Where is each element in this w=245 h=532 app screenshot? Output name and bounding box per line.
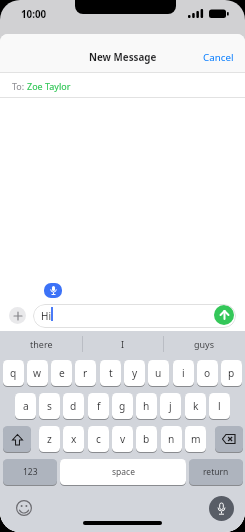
button[interactable] [9, 307, 26, 324]
staticText: p [228, 366, 235, 380]
staticText: guys [194, 338, 214, 350]
staticText: Hi [41, 309, 51, 323]
staticText: there [30, 338, 53, 350]
staticText: u [155, 366, 162, 380]
button[interactable]: Hi [33, 304, 236, 328]
button[interactable]: h [136, 393, 157, 419]
button[interactable]: g [112, 393, 133, 419]
staticText: z [47, 432, 52, 446]
button[interactable]: 123 [3, 459, 57, 485]
button[interactable]: c [88, 426, 109, 452]
button[interactable]: l [209, 393, 230, 419]
button[interactable]: p [221, 360, 242, 386]
staticText: d [70, 399, 77, 413]
button[interactable]: b [136, 426, 157, 452]
staticText: b [143, 432, 150, 446]
staticText: New Message [89, 51, 157, 64]
staticText: s [47, 399, 52, 413]
staticText: g [119, 399, 126, 413]
staticText: j [169, 399, 172, 413]
button[interactable] [3, 426, 31, 452]
button[interactable]: u [148, 360, 169, 386]
staticText: h [143, 399, 150, 413]
button[interactable]: Cancel [203, 51, 234, 64]
button[interactable]: k [185, 393, 206, 419]
button[interactable]: w [27, 360, 48, 386]
button[interactable] [214, 305, 234, 325]
staticText: f [97, 399, 101, 413]
button[interactable]: f [88, 393, 109, 419]
staticText: q [10, 366, 17, 380]
button[interactable]: o [197, 360, 218, 386]
button[interactable]: y [124, 360, 145, 386]
staticText: v [120, 432, 126, 446]
button[interactable]: v [112, 426, 133, 452]
button[interactable]: return [189, 459, 243, 485]
staticText: Cancel [203, 51, 234, 64]
button[interactable]: j [160, 393, 181, 419]
staticText: y [132, 366, 138, 380]
button[interactable]: To: [0, 75, 245, 97]
button[interactable]: z [39, 426, 60, 452]
staticText: m [191, 432, 201, 446]
button[interactable]: r [75, 360, 96, 386]
staticText: k [193, 399, 199, 413]
staticText: Zoe Taylor [27, 80, 71, 92]
staticText: r [83, 366, 88, 380]
staticText: l [218, 399, 221, 413]
button[interactable]: e [51, 360, 72, 386]
staticText: To: [12, 80, 27, 92]
button[interactable]: m [185, 426, 206, 452]
staticText: I [121, 338, 125, 350]
staticText: 123 [23, 466, 38, 478]
button[interactable]: n [161, 426, 182, 452]
button[interactable]: there [0, 331, 82, 357]
button[interactable]: guys [163, 331, 245, 357]
button[interactable]: d [63, 393, 84, 419]
staticText: w [33, 366, 42, 380]
button[interactable]: space [60, 459, 186, 485]
staticText: return [203, 466, 229, 478]
button[interactable]: i [173, 360, 194, 386]
button[interactable] [14, 498, 34, 518]
button[interactable]: a [15, 393, 36, 419]
button[interactable] [209, 496, 234, 521]
button[interactable]: s [39, 393, 60, 419]
button[interactable]: q [3, 360, 24, 386]
staticText: a [23, 399, 29, 413]
staticText: o [204, 366, 211, 380]
button[interactable]: t [100, 360, 121, 386]
button[interactable]: I [82, 331, 163, 357]
staticText: 10:00 [21, 8, 47, 21]
button[interactable]: x [63, 426, 84, 452]
button[interactable] [215, 426, 243, 452]
staticText: x [71, 432, 77, 446]
staticText: n [168, 432, 175, 446]
staticText: space [112, 466, 135, 478]
staticText: e [59, 366, 65, 380]
staticText: c [96, 432, 101, 446]
staticText: t [109, 366, 113, 380]
staticText: i [182, 366, 185, 380]
